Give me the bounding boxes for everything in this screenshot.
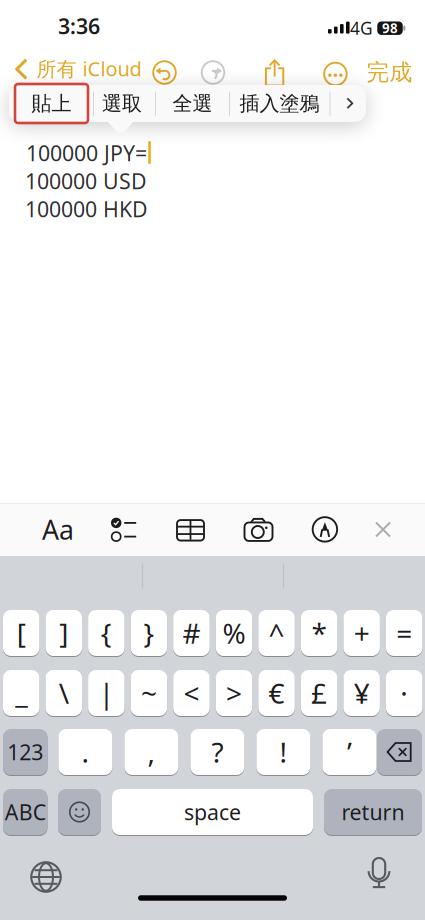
button[interactable]: +	[343, 609, 380, 656]
button[interactable]: Undo	[153, 61, 176, 84]
staticText: space	[184, 798, 241, 826]
staticText: *	[312, 614, 327, 652]
button[interactable]: *	[301, 609, 337, 656]
staticText: Aa	[42, 512, 74, 547]
button[interactable]: \	[45, 669, 82, 716]
staticText: ^	[268, 614, 284, 652]
staticText: return	[341, 798, 404, 826]
button[interactable]: £	[301, 669, 337, 716]
button[interactable]: !	[256, 728, 310, 775]
button[interactable]: Table	[168, 508, 212, 552]
staticText: £	[311, 674, 327, 712]
staticText: 貼上	[31, 91, 71, 116]
button[interactable]: ,	[124, 728, 178, 775]
button[interactable]: 全選	[157, 85, 227, 122]
button[interactable]: ]	[45, 609, 82, 656]
staticText: |	[99, 674, 114, 712]
button[interactable]: More	[324, 62, 347, 85]
staticText: ,	[147, 733, 155, 771]
button[interactable]: return	[324, 788, 422, 835]
staticText: 選取	[102, 91, 142, 116]
button[interactable]: ¥	[343, 669, 380, 716]
button[interactable]: Share	[265, 59, 285, 86]
button[interactable]: <	[173, 669, 210, 716]
staticText: }	[143, 614, 154, 652]
staticText: 全選	[172, 91, 212, 116]
button[interactable]: 123	[3, 728, 47, 775]
button[interactable]: }	[131, 609, 167, 656]
button[interactable]: _	[3, 669, 39, 716]
staticText: #	[182, 614, 200, 652]
staticText: \	[59, 674, 69, 712]
button[interactable]: ~	[131, 669, 167, 716]
button[interactable]: Markup	[303, 507, 347, 551]
button[interactable]: ’	[322, 728, 376, 775]
button[interactable]: %	[216, 609, 252, 656]
staticText: .	[81, 733, 89, 771]
staticText: +	[354, 614, 370, 652]
button[interactable]: [	[3, 609, 39, 656]
button[interactable]: Dictation	[368, 857, 390, 888]
button[interactable]: Checklist	[102, 507, 146, 551]
button[interactable]: {	[88, 609, 125, 656]
staticText: <	[183, 674, 199, 712]
button[interactable]: 選取	[93, 85, 151, 122]
staticText: 完成	[366, 59, 412, 86]
button[interactable]: Dismiss keyboard	[365, 511, 401, 547]
staticText: >	[226, 674, 242, 712]
button[interactable]: Format	[36, 507, 80, 551]
button[interactable]: 插入塗鴉	[231, 85, 327, 122]
staticText: 98	[382, 19, 398, 37]
staticText: ~	[141, 674, 157, 712]
button[interactable]: >	[216, 669, 252, 716]
button[interactable]: #	[173, 609, 210, 656]
staticText: {	[101, 614, 112, 652]
staticText: ?	[211, 733, 223, 771]
button[interactable]: ·	[386, 669, 422, 716]
staticText: ·	[400, 674, 408, 712]
button[interactable]: 完成	[366, 59, 412, 86]
staticText: 100000 USD	[25, 167, 147, 195]
button[interactable]: Emoji	[58, 788, 101, 835]
button[interactable]: Delete	[377, 728, 422, 775]
staticText: 插入塗鴉	[239, 91, 319, 116]
staticText: 4G	[350, 16, 373, 39]
staticText: 3:36	[58, 12, 100, 40]
staticText: [	[17, 614, 26, 652]
button[interactable]: |	[88, 669, 125, 716]
staticText: _	[15, 674, 27, 712]
button[interactable]: €	[258, 669, 295, 716]
button[interactable]: 貼上	[16, 85, 86, 122]
staticText: 所有 iCloud	[36, 55, 141, 82]
button[interactable]: Redo	[201, 61, 224, 84]
button[interactable]: =	[386, 609, 422, 656]
button[interactable]: ^	[258, 609, 295, 656]
staticText: ABC	[5, 798, 46, 826]
button[interactable]: Camera	[236, 507, 280, 551]
staticText: 100000 JPY=	[26, 139, 147, 167]
button[interactable]: ?	[190, 728, 244, 775]
button[interactable]: .	[58, 728, 112, 775]
staticText: 100000 HKD	[25, 195, 148, 223]
staticText: %	[222, 614, 245, 652]
staticText: =	[396, 614, 412, 652]
button[interactable]: ABC	[3, 788, 47, 835]
staticText: ]	[59, 614, 68, 652]
button[interactable]: Back	[14, 57, 146, 87]
staticText: ’	[347, 733, 352, 771]
staticText: !	[279, 733, 287, 771]
staticText: €	[268, 674, 284, 712]
button[interactable]: Next keyboard	[31, 862, 61, 892]
staticText: 123	[7, 738, 43, 766]
staticText: ¥	[354, 674, 370, 712]
button[interactable]: space	[112, 788, 313, 835]
button[interactable]: More actions	[333, 85, 367, 122]
